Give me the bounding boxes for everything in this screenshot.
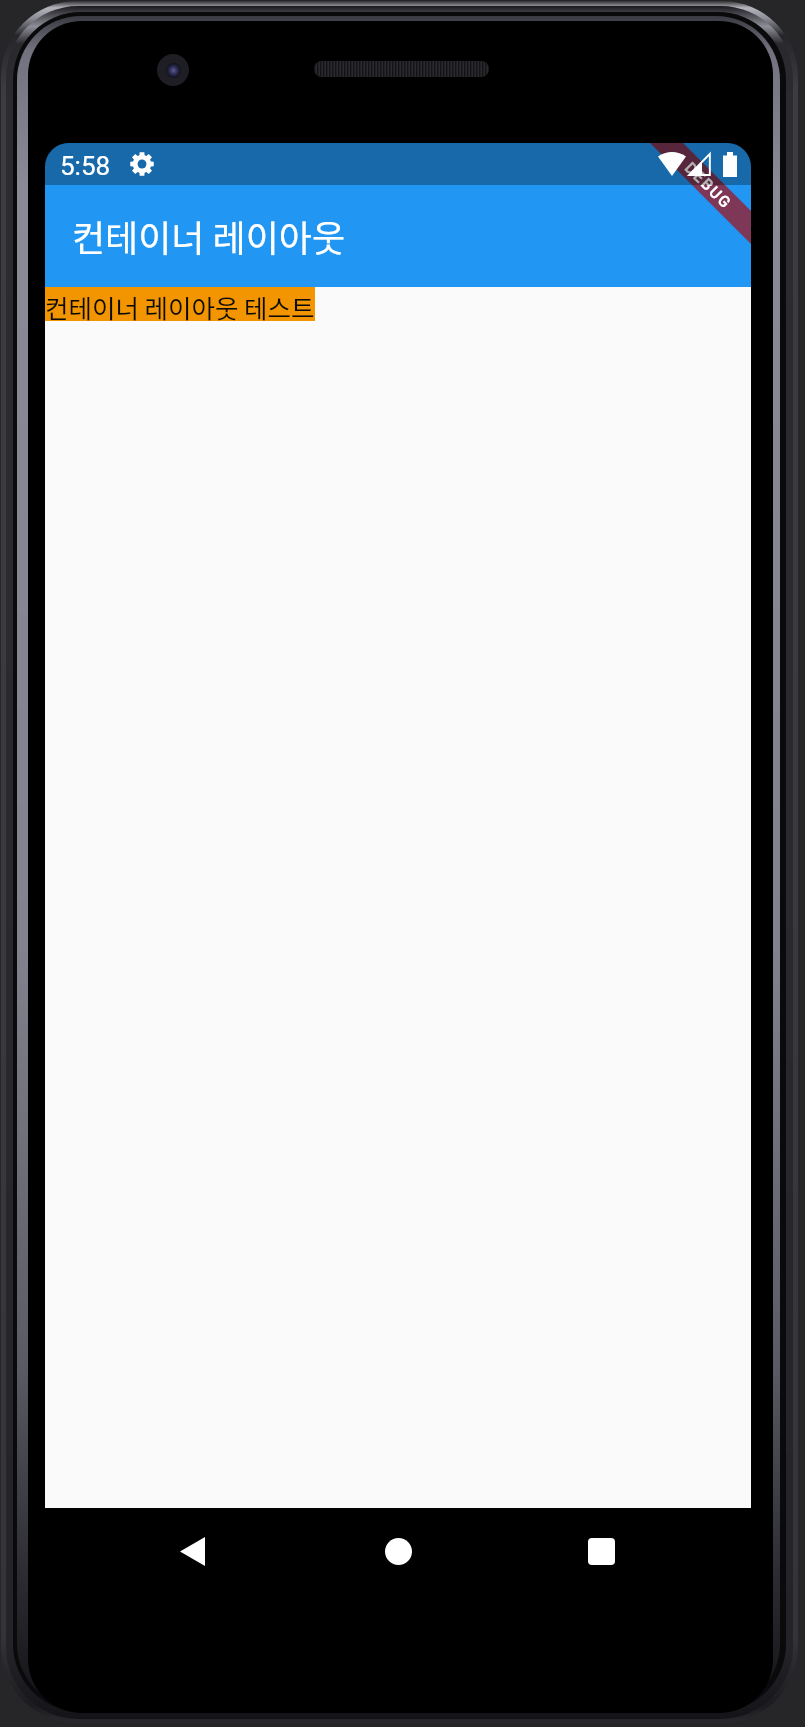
staticText: 컨테이너 레이아웃 테스트 <box>45 288 315 322</box>
staticText: 컨테이너 레이아웃 <box>72 210 346 262</box>
staticText: 5:58 <box>60 151 111 181</box>
button[interactable]: Recents <box>571 1506 631 1596</box>
button[interactable]: Back <box>162 1506 222 1596</box>
button[interactable]: Home <box>368 1506 428 1596</box>
staticText: DEBUG <box>681 159 736 213</box>
